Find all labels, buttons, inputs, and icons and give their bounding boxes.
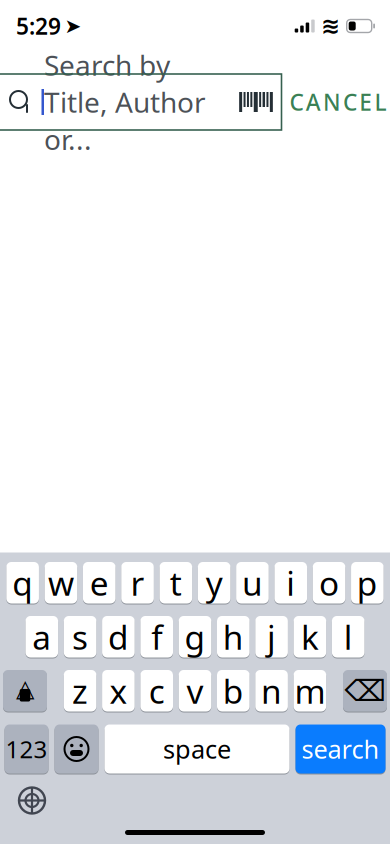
button[interactable]: n bbox=[255, 669, 288, 712]
staticText: g bbox=[184, 615, 205, 659]
button[interactable]: x bbox=[102, 669, 135, 712]
button[interactable]: k bbox=[294, 615, 326, 658]
button[interactable]: t bbox=[159, 561, 192, 604]
staticText: u bbox=[242, 561, 263, 605]
staticText: A bbox=[306, 87, 321, 117]
button[interactable]: d bbox=[102, 615, 135, 658]
button[interactable]: h bbox=[217, 615, 250, 658]
button[interactable]: w bbox=[45, 561, 77, 604]
staticText: m bbox=[294, 669, 325, 713]
button[interactable]: z bbox=[64, 669, 96, 712]
staticText: space bbox=[163, 732, 231, 766]
button[interactable]: v bbox=[179, 669, 211, 712]
staticText: i bbox=[286, 561, 295, 605]
button[interactable]: a bbox=[25, 615, 58, 658]
button[interactable]: u bbox=[236, 561, 269, 604]
staticText: E bbox=[359, 87, 372, 117]
button[interactable]: j bbox=[255, 615, 288, 658]
staticText: h bbox=[223, 615, 244, 659]
staticText: n bbox=[261, 669, 282, 713]
staticText: o bbox=[319, 561, 339, 605]
staticText: N bbox=[323, 87, 341, 117]
staticText: L bbox=[374, 87, 386, 117]
staticText: ≋ bbox=[321, 13, 340, 39]
button[interactable]: p bbox=[351, 561, 384, 604]
button[interactable]: g bbox=[179, 615, 211, 658]
staticText: t bbox=[170, 561, 182, 605]
button[interactable]: f bbox=[140, 615, 173, 658]
staticText: p bbox=[357, 561, 378, 605]
staticText: Search by Title, Author or... bbox=[44, 46, 206, 158]
button[interactable]: b bbox=[217, 669, 250, 712]
staticText: r bbox=[130, 561, 144, 605]
button[interactable]: o bbox=[313, 561, 345, 604]
staticText: s bbox=[72, 615, 88, 659]
button[interactable]: y bbox=[198, 561, 230, 604]
staticText: d bbox=[108, 615, 129, 659]
button[interactable]: Next keyboard bbox=[12, 780, 52, 820]
staticText: l bbox=[344, 615, 353, 659]
staticText: f bbox=[151, 615, 162, 659]
button[interactable]: q bbox=[6, 561, 39, 604]
button[interactable]: 123 bbox=[4, 723, 48, 774]
staticText: ➤ bbox=[64, 15, 81, 37]
staticText: e bbox=[90, 561, 109, 605]
staticText: w bbox=[48, 561, 74, 605]
staticText: ⌫ bbox=[344, 674, 385, 707]
staticText: b bbox=[223, 669, 244, 713]
button[interactable]: search bbox=[295, 723, 385, 774]
button[interactable]: c bbox=[140, 669, 173, 712]
button[interactable]: Shift bbox=[3, 669, 47, 712]
staticText: k bbox=[301, 615, 319, 659]
button[interactable]: s bbox=[64, 615, 96, 658]
staticText: q bbox=[12, 561, 33, 605]
button[interactable]: C bbox=[281, 74, 390, 130]
staticText: c bbox=[149, 669, 165, 713]
staticText: z bbox=[72, 669, 88, 713]
button[interactable]: space bbox=[104, 723, 289, 774]
staticText: C bbox=[343, 87, 357, 117]
staticText: C bbox=[289, 87, 303, 117]
staticText: 123 bbox=[5, 733, 47, 765]
staticText: j bbox=[267, 615, 276, 659]
button[interactable]: m bbox=[294, 669, 326, 712]
staticText: 5:29 bbox=[16, 11, 61, 41]
button[interactable]: r bbox=[121, 561, 154, 604]
staticText: x bbox=[109, 669, 127, 713]
button[interactable]: e bbox=[83, 561, 115, 604]
staticText: y bbox=[206, 561, 223, 605]
staticText: a bbox=[32, 615, 51, 659]
button[interactable]: Emoji bbox=[54, 723, 98, 774]
staticText: △ bbox=[16, 675, 34, 702]
button[interactable]: i bbox=[274, 561, 307, 604]
button[interactable]: Scan barcode bbox=[236, 78, 275, 126]
staticText: search bbox=[301, 732, 379, 766]
button[interactable]: Delete bbox=[343, 669, 387, 712]
staticText: v bbox=[186, 669, 203, 713]
button[interactable]: l bbox=[332, 615, 364, 658]
